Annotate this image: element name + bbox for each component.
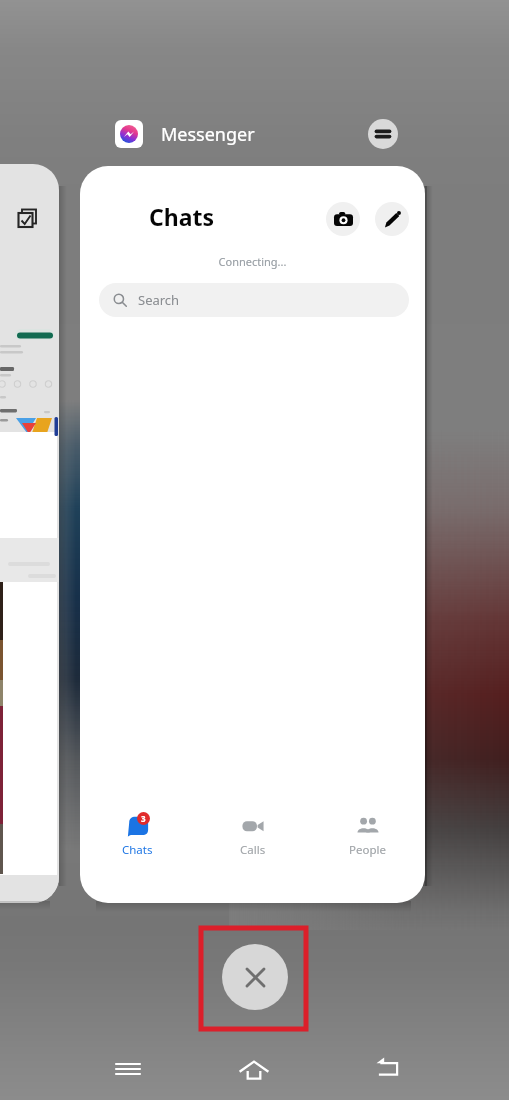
button[interactable]: Close app <box>222 944 288 1010</box>
button[interactable]: People <box>310 810 425 863</box>
staticText: Connecting... <box>80 254 425 269</box>
staticText: Chats <box>122 842 153 858</box>
button[interactable]: Recents <box>106 1047 150 1091</box>
button[interactable]: Camera <box>326 202 360 236</box>
button[interactable]: Messenger app window <box>80 166 425 903</box>
button[interactable]: Home <box>232 1048 276 1092</box>
staticText: 3 <box>141 813 146 824</box>
button[interactable]: Tasks app <box>0 164 59 903</box>
button[interactable]: Back <box>366 1046 410 1090</box>
staticText: Calls <box>240 842 266 858</box>
staticText: Search <box>138 291 180 309</box>
button[interactable]: Search <box>99 283 409 317</box>
staticText: People <box>349 842 386 858</box>
staticText: Chats <box>149 201 215 232</box>
button[interactable]: 3 <box>80 810 195 863</box>
button[interactable]: Calls <box>195 810 310 863</box>
button[interactable]: New message <box>375 202 409 236</box>
staticText: Messenger <box>161 122 255 147</box>
button[interactable]: App options <box>368 119 398 149</box>
